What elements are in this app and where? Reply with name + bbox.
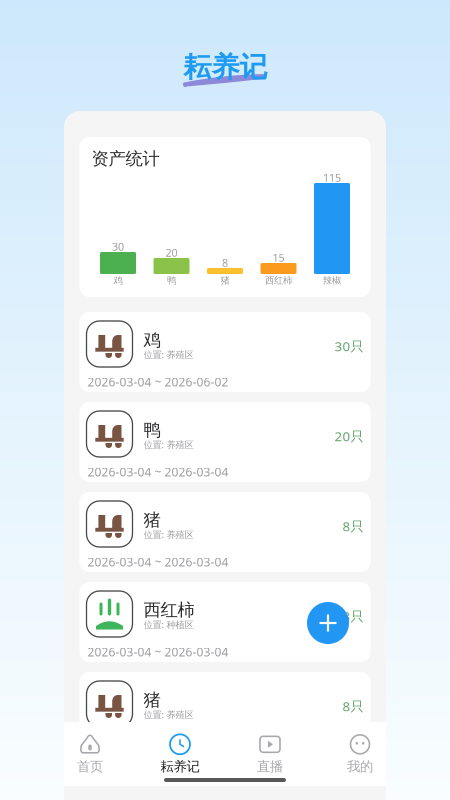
button[interactable]: 猪 [79, 672, 370, 752]
staticText: 位置: 养殖区 [143, 438, 193, 451]
button[interactable]: 鸡 [79, 312, 370, 392]
button[interactable]: 猪 [79, 492, 370, 572]
staticText: 鸭 [167, 275, 176, 286]
staticText: 猪 [143, 689, 160, 711]
button[interactable]: 耘养记 [135, 731, 225, 777]
staticText: 8只 [342, 697, 363, 715]
staticText: 位置: 养殖区 [143, 708, 193, 721]
staticText: 20 [165, 245, 177, 260]
staticText: 鸡 [143, 329, 160, 351]
staticText: 辣椒 [323, 275, 341, 286]
staticText: 20只 [334, 427, 363, 445]
staticText: 115 [323, 170, 341, 185]
staticText: 2026-03-04 ~ 2026-03-04 [87, 644, 228, 660]
staticText: 耘养记 [160, 758, 199, 775]
staticText: 2026-03-04 ~ 2026-03-04 [87, 464, 228, 480]
staticText: 西红柿 [265, 275, 292, 286]
staticText: 猪 [220, 275, 229, 286]
staticText: 西红柿 [143, 599, 194, 621]
staticText: 猪 [143, 509, 160, 531]
staticText: 8只 [342, 607, 363, 625]
staticText: 8只 [342, 517, 363, 535]
staticText: 30 [112, 239, 124, 254]
staticText: 30只 [334, 337, 363, 355]
button[interactable]: 鸭 [79, 402, 370, 482]
staticText: 位置: 种植区 [143, 618, 193, 631]
button[interactable]: 直播 [225, 731, 315, 777]
staticText: 鸡 [113, 275, 122, 286]
staticText: 资产统计 [91, 148, 159, 169]
button[interactable]: 西红柿 [79, 582, 370, 662]
staticText: 耘养记 [183, 50, 267, 84]
staticText: 首页 [77, 758, 103, 775]
button[interactable]: 我的 [315, 731, 405, 777]
staticText: 直播 [257, 758, 283, 775]
button[interactable]: 首页 [45, 731, 135, 777]
staticText: 2026-03-04 ~ 2026-03-04 [87, 734, 228, 750]
staticText: 我的 [347, 758, 373, 775]
button[interactable]: Add [307, 602, 349, 644]
staticText: 位置: 养殖区 [143, 528, 193, 541]
staticText: 15 [272, 250, 284, 265]
staticText: 2026-03-04 ~ 2026-06-02 [87, 374, 228, 390]
staticText: 鸭 [143, 419, 160, 441]
staticText: 位置: 养殖区 [143, 348, 193, 361]
staticText: 8 [222, 255, 228, 270]
staticText: 2026-03-04 ~ 2026-03-04 [87, 554, 228, 570]
